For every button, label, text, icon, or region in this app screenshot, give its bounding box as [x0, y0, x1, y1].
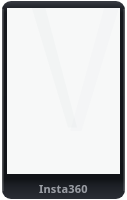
- staticText: Insta360: [39, 181, 88, 196]
- button[interactable]: Insta360: [2, 1, 125, 199]
